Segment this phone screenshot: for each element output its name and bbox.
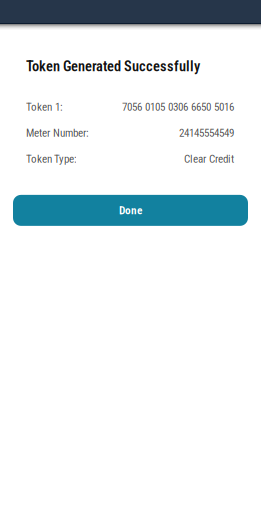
staticText: Done [119,204,142,217]
staticText: Meter Number: [26,126,89,139]
staticText: Token Type: [26,152,77,165]
staticText: 24145554549 [179,126,234,139]
staticText: Token Generated Successfully [26,58,200,75]
staticText: Clear Credit [184,152,234,165]
button[interactable]: Done [13,195,248,226]
staticText: 7056 0105 0306 6650 5016 [122,100,234,113]
staticText: Token 1: [26,100,63,113]
